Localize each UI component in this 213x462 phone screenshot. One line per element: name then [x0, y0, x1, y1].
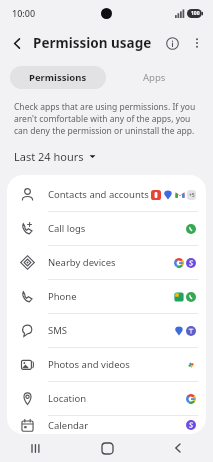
button[interactable]: Back [162, 434, 194, 462]
staticText: Permission usage [33, 34, 152, 52]
staticText: Nearby devices [48, 256, 116, 269]
staticText: 10:00 [12, 7, 36, 19]
staticText: Photos and videos [48, 358, 130, 371]
staticText: 100 [191, 10, 200, 17]
staticText: Call logs [48, 222, 86, 235]
button[interactable]: More options [185, 31, 209, 55]
button[interactable]: SMS [7, 314, 206, 347]
staticText: Last 24 hours [14, 149, 84, 164]
button[interactable]: Calendar [7, 416, 206, 434]
button[interactable]: Recent apps [20, 434, 52, 462]
button[interactable]: Home [91, 434, 123, 462]
staticText: Check apps that are using permissions. I… [14, 101, 199, 137]
button[interactable]: Phone [7, 280, 206, 313]
staticText: Phone [48, 290, 77, 303]
button[interactable]: Nearby devices [7, 246, 206, 279]
button[interactable]: Contacts and accounts [7, 178, 206, 211]
staticText: Permissions [29, 71, 87, 84]
staticText: Contacts and accounts [48, 188, 149, 201]
staticText: Calendar [48, 419, 89, 432]
button[interactable]: Call logs [7, 212, 206, 245]
staticText: +5 [189, 192, 195, 199]
button[interactable]: Last 24 hours [14, 149, 96, 164]
staticText: SMS [48, 324, 68, 337]
button[interactable]: Location [7, 382, 206, 415]
button[interactable]: Photos and videos [7, 348, 206, 381]
button[interactable]: Information [159, 30, 185, 56]
staticText: Apps [143, 71, 166, 84]
button[interactable]: Permissions [10, 66, 106, 89]
staticText: Location [48, 392, 87, 405]
button[interactable]: Apps [106, 66, 203, 89]
button[interactable]: Back [4, 30, 30, 56]
